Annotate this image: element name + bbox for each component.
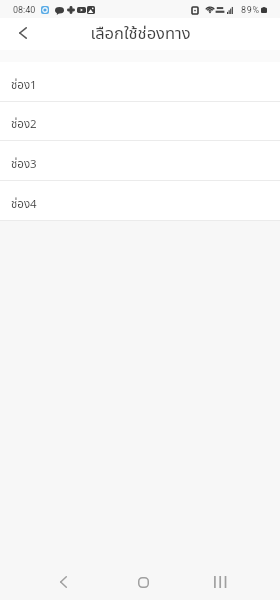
button[interactable]: ช่อง3 (0, 141, 280, 181)
button[interactable]: Back (37, 562, 89, 600)
button[interactable]: Home (117, 562, 169, 600)
button[interactable]: ช่อง2 (0, 102, 280, 141)
staticText: ช่อง4 (11, 196, 37, 213)
staticText: ช่อง3 (11, 156, 37, 173)
staticText: 89% (241, 5, 260, 16)
staticText: 08:40 (13, 5, 36, 16)
button[interactable]: ช่อง4 (0, 181, 280, 221)
staticText: ช่อง2 (11, 116, 37, 133)
button[interactable]: ช่อง1 (0, 62, 280, 102)
staticText: ช่อง1 (11, 77, 37, 94)
staticText: เลือกใช้ช่องทาง (90, 21, 191, 46)
button[interactable]: Recent apps (194, 562, 246, 600)
button[interactable]: Back (6, 18, 39, 50)
